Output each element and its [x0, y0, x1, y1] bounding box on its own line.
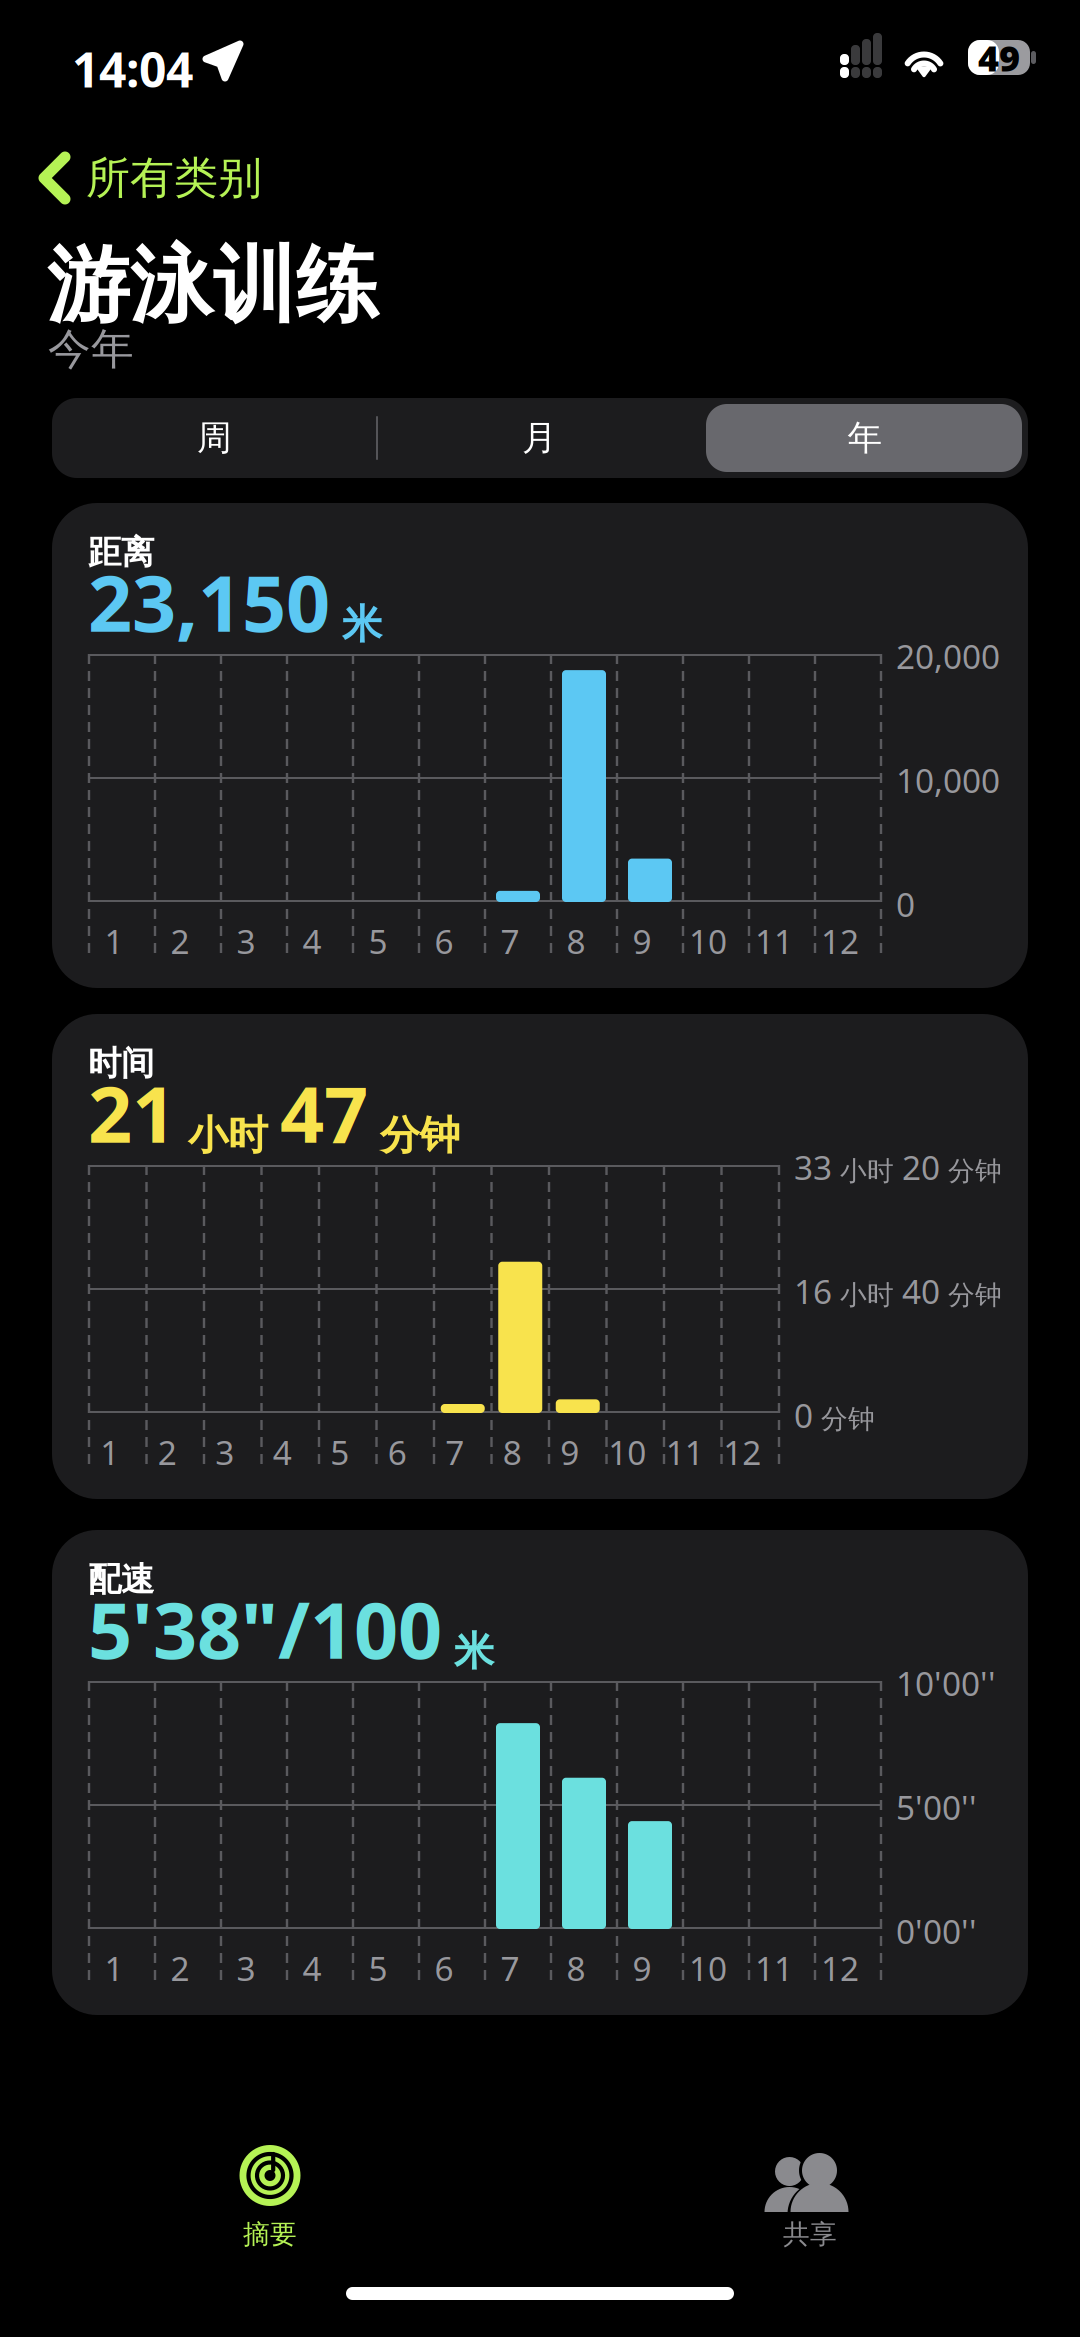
staticText: 3	[215, 1430, 234, 1474]
staticText: 米	[442, 1627, 494, 1676]
staticText: 摘要	[243, 2218, 297, 2251]
staticText: 5	[368, 1946, 387, 1990]
button[interactable]: 摘要	[0, 2100, 540, 2260]
staticText: 分钟	[813, 1403, 875, 1436]
staticText: 40	[902, 1269, 940, 1313]
staticText: 11	[666, 1430, 704, 1474]
staticText: 10	[689, 919, 727, 963]
staticText: 5'38"/100	[88, 1577, 442, 1680]
staticText: 共享	[783, 2218, 837, 2251]
staticText: 4	[302, 1946, 321, 1990]
staticText: 12	[821, 1946, 859, 1990]
staticText: 7	[500, 919, 519, 963]
button[interactable]: 月	[377, 398, 702, 478]
staticText: 周	[197, 417, 232, 459]
staticText: 47	[280, 1061, 368, 1164]
staticText: 5	[330, 1430, 349, 1474]
staticText: 0	[794, 1393, 813, 1437]
staticText: 1	[104, 1946, 123, 1990]
staticText: 所有类别	[86, 151, 262, 205]
button[interactable]: 共享	[540, 2100, 1080, 2260]
staticText: 10	[689, 1946, 727, 1990]
staticText: 小时	[176, 1111, 280, 1160]
staticText: 20,000	[896, 634, 1000, 678]
staticText: 3	[236, 919, 255, 963]
button[interactable]: 年	[702, 398, 1028, 478]
staticText: 21	[88, 1061, 176, 1164]
staticText: 9	[560, 1430, 579, 1474]
staticText: 10'00''	[896, 1661, 996, 1705]
staticText: 0	[896, 882, 915, 926]
staticText: 分钟	[940, 1279, 1002, 1312]
staticText: 月	[522, 417, 557, 459]
staticText: 年	[847, 417, 882, 459]
button[interactable]: 周	[52, 398, 377, 478]
staticText: 2	[170, 1946, 189, 1990]
staticText: 小时	[832, 1155, 902, 1188]
staticText: 11	[755, 1946, 793, 1990]
staticText: 6	[388, 1430, 407, 1474]
staticText: 10	[608, 1430, 646, 1474]
staticText: 时间	[88, 1043, 154, 1084]
staticText: 4	[273, 1430, 292, 1474]
staticText: 3	[236, 1946, 255, 1990]
staticText: 9	[632, 919, 651, 963]
staticText: 49	[978, 34, 1020, 81]
staticText: 4	[302, 919, 321, 963]
staticText: 米	[330, 600, 382, 649]
staticText: 20	[902, 1145, 940, 1189]
staticText: 游泳训练	[47, 235, 379, 336]
staticText: 12	[821, 919, 859, 963]
staticText: 12	[723, 1430, 761, 1474]
staticText: 小时	[832, 1279, 902, 1312]
staticText: 23,150	[88, 550, 330, 653]
staticText: 8	[566, 919, 585, 963]
staticText: 6	[434, 1946, 453, 1990]
staticText: 2	[170, 919, 189, 963]
button[interactable]: 所有类别	[0, 128, 1080, 228]
staticText: 8	[503, 1430, 522, 1474]
staticText: 10,000	[896, 758, 1000, 802]
staticText: 分钟	[368, 1111, 460, 1160]
staticText: 1	[104, 919, 123, 963]
staticText: 1	[100, 1430, 119, 1474]
staticText: 配速	[88, 1559, 154, 1600]
staticText: 7	[500, 1946, 519, 1990]
staticText: 14:04	[72, 37, 193, 101]
staticText: 6	[434, 919, 453, 963]
staticText: 今年	[48, 323, 134, 375]
staticText: 0'00''	[896, 1909, 977, 1953]
staticText: 9	[632, 1946, 651, 1990]
staticText: 距离	[88, 532, 154, 573]
staticText: 33	[794, 1145, 832, 1189]
staticText: 16	[794, 1269, 832, 1313]
staticText: 8	[566, 1946, 585, 1990]
staticText: 5'00''	[896, 1785, 977, 1829]
staticText: 5	[368, 919, 387, 963]
staticText: 2	[158, 1430, 177, 1474]
staticText: 分钟	[940, 1155, 1002, 1188]
staticText: 7	[445, 1430, 464, 1474]
staticText: 11	[755, 919, 793, 963]
